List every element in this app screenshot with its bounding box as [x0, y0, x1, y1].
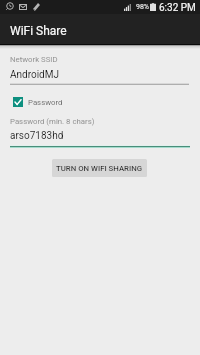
staticText: Network SSID [10, 55, 58, 64]
button[interactable]: Password [10, 94, 63, 110]
staticText: TURN ON WIFI SHARING [56, 164, 143, 173]
staticText: Password [28, 98, 63, 107]
staticText: 98% [136, 3, 149, 11]
staticText: AndroidMJ [10, 69, 59, 81]
staticText: WiFi Share [10, 24, 67, 38]
staticText: 6:32 PM [159, 2, 196, 14]
staticText: arso7183hd [10, 130, 64, 142]
staticText: Password (min. 8 chars) [10, 117, 95, 126]
button[interactable]: TURN ON WIFI SHARING [52, 159, 147, 177]
